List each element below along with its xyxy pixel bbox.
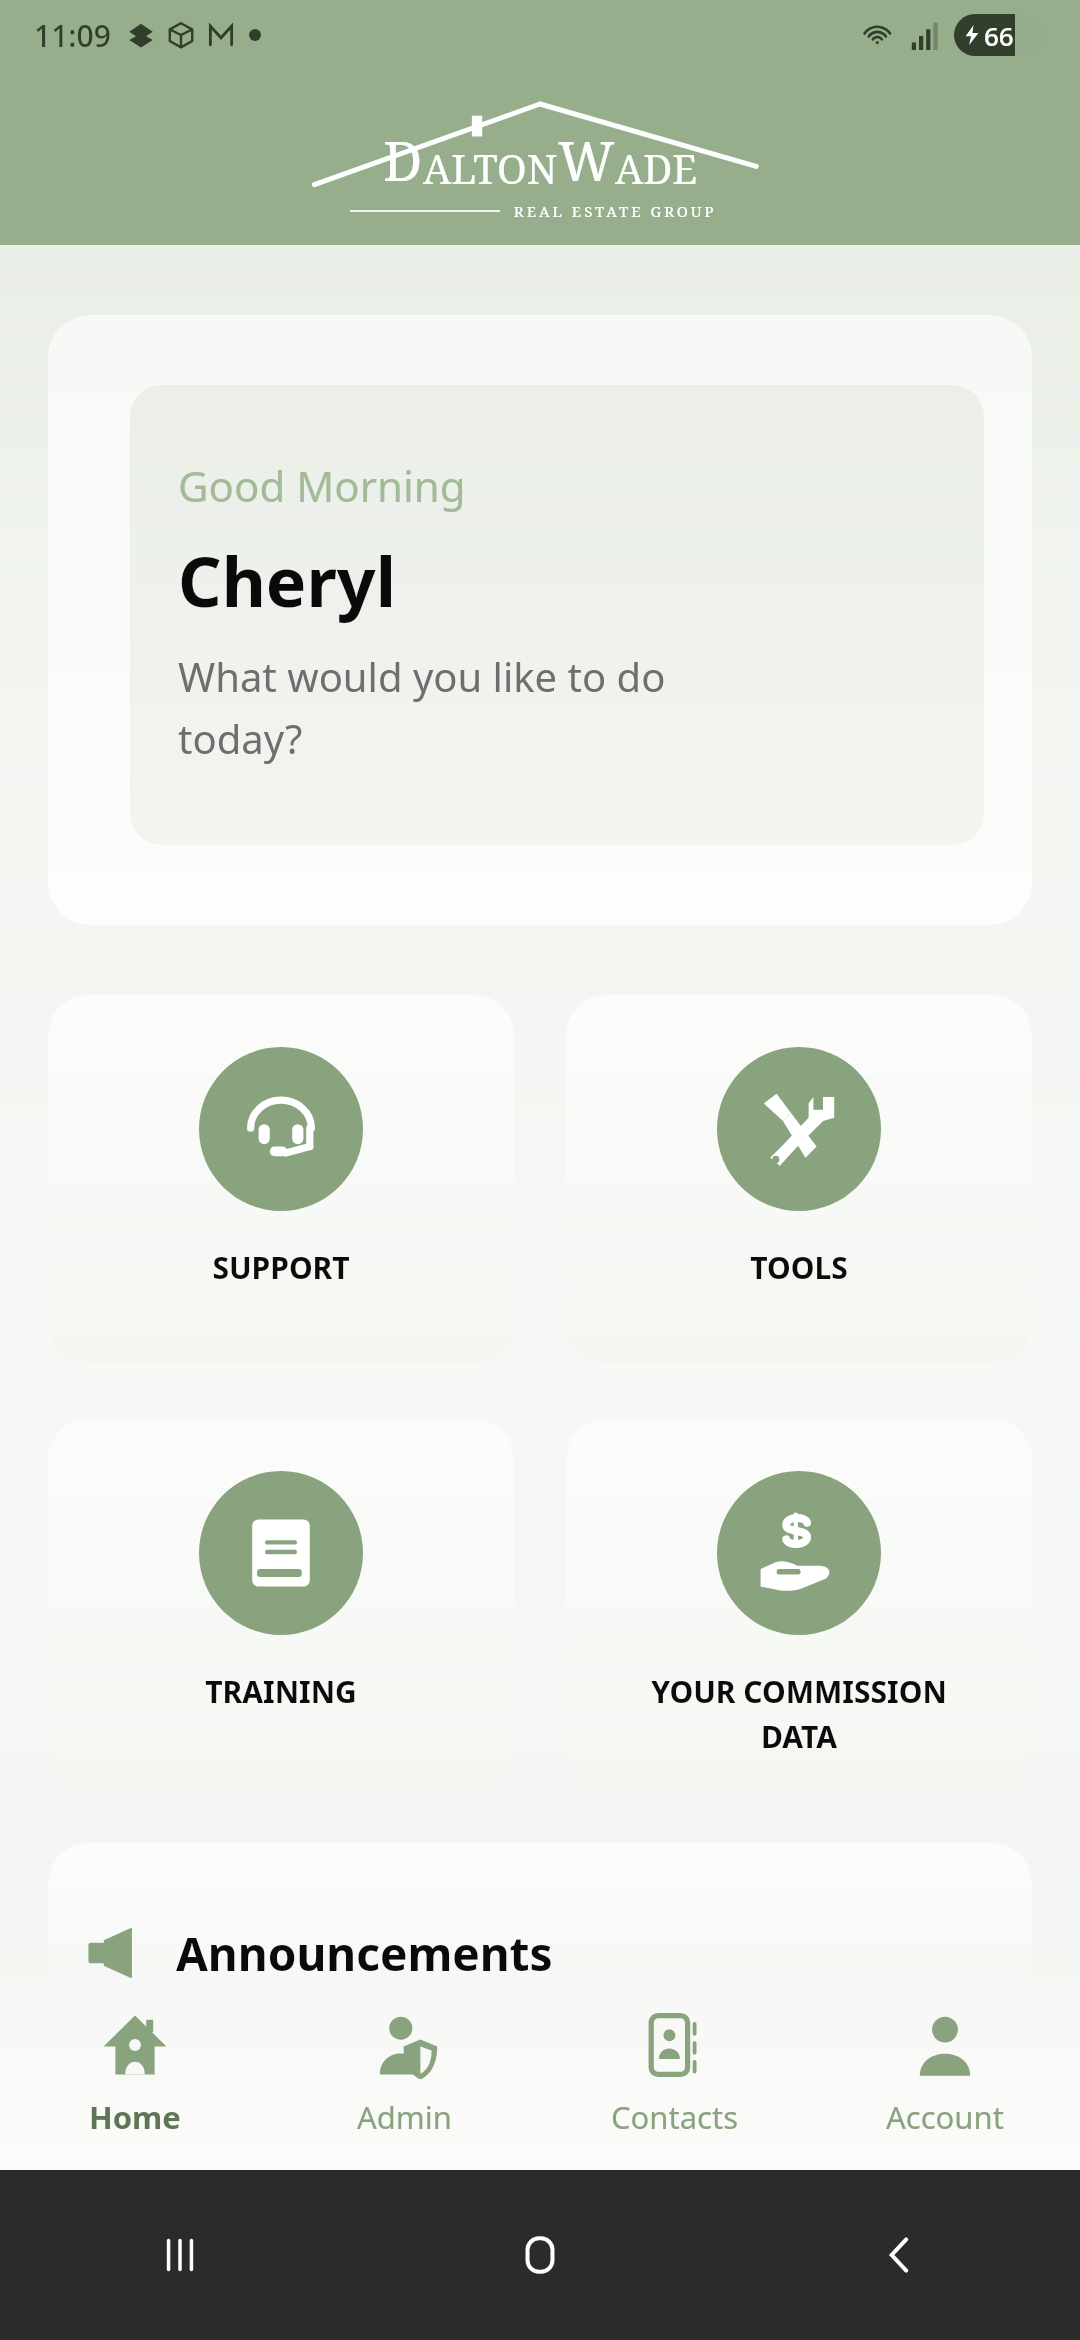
staticText: 66 (984, 18, 1014, 53)
button[interactable]: Account (810, 1978, 1080, 2170)
staticText: Contacts (611, 2096, 739, 2138)
button[interactable]: SUPPORT (48, 995, 514, 1363)
button[interactable]: Contacts (540, 1978, 810, 2170)
button[interactable]: Good Morning (48, 315, 1032, 925)
staticText: TRAINING (56, 1671, 506, 1712)
button[interactable]: Back (720, 2170, 1080, 2340)
button[interactable]: Announcements (48, 1843, 1032, 2063)
button[interactable]: Home (0, 1978, 270, 2170)
staticText: Admin (357, 2096, 453, 2138)
staticText: REAL ESTATE GROUP (500, 201, 731, 221)
staticText: What would you like to do today? (178, 649, 666, 765)
staticText: D (383, 123, 423, 197)
button[interactable]: TRAINING (48, 1419, 514, 1787)
button[interactable]: Home (360, 2170, 720, 2340)
staticText: SUPPORT (56, 1247, 506, 1288)
button[interactable]: TOOLS (566, 995, 1032, 1363)
staticText: W (558, 123, 615, 197)
staticText: Account (886, 2096, 1004, 2138)
button[interactable]: YOUR COMMISSION DATA (566, 1419, 1032, 1787)
staticText: YOUR COMMISSION DATA (574, 1671, 1024, 1756)
staticText: ALTON (423, 141, 558, 195)
staticText: Good Morning (178, 457, 466, 514)
staticText: Cheryl (178, 534, 396, 627)
staticText: 11:09 (34, 15, 111, 56)
staticText: Announcements (176, 1922, 553, 1985)
staticText: TOOLS (574, 1247, 1024, 1288)
button[interactable]: Recent apps (0, 2170, 360, 2340)
button[interactable]: Admin (270, 1978, 540, 2170)
staticText: ADE (615, 141, 698, 195)
staticText: Home (89, 2096, 181, 2138)
